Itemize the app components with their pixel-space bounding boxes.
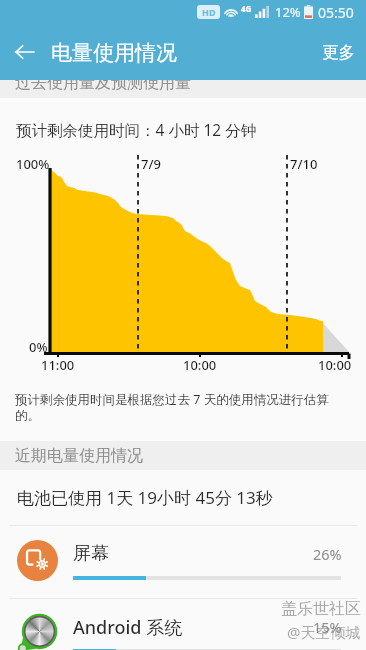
staticText: 12% (275, 3, 301, 21)
staticText: 近期电量使用情况 (15, 446, 143, 466)
staticText: 屏幕 (73, 542, 109, 565)
staticText: 7/10 (290, 155, 318, 173)
staticText: Android 系统 (73, 615, 183, 640)
staticText: 15% (313, 617, 342, 637)
button[interactable]: Android 系统 (0, 599, 366, 650)
button[interactable]: 屏幕 (0, 526, 366, 598)
staticText: 电量使用情况 (51, 40, 177, 66)
staticText: 05:50 (318, 3, 354, 22)
staticText: 10:00 (318, 356, 352, 374)
staticText: 4G (241, 3, 252, 14)
staticText: 26% (313, 544, 342, 564)
staticText: 7/9 (141, 155, 161, 173)
staticText: 过去使用量及预测使用量 (15, 80, 191, 91)
staticText: 盖乐世社区 (281, 599, 361, 619)
staticText: 100% (16, 155, 50, 173)
staticText: 更多 (322, 42, 355, 63)
staticText: HD (202, 6, 216, 18)
staticText: 预计剩余使用时间：4 小时 12 分钟 (16, 119, 257, 140)
staticText: 10:00 (183, 356, 217, 374)
button[interactable]: 更多 (310, 24, 366, 80)
staticText: 11:00 (41, 356, 75, 374)
staticText: @天空倾城 (287, 622, 361, 642)
staticText: 预计剩余使用时间是根据您过去 7 天的使用情况进行估算的。 (15, 391, 339, 424)
staticText: 0% (29, 338, 48, 356)
staticText: 电池已使用 1天 19小时 45分 13秒 (17, 486, 273, 509)
button[interactable]: Back (0, 28, 48, 76)
